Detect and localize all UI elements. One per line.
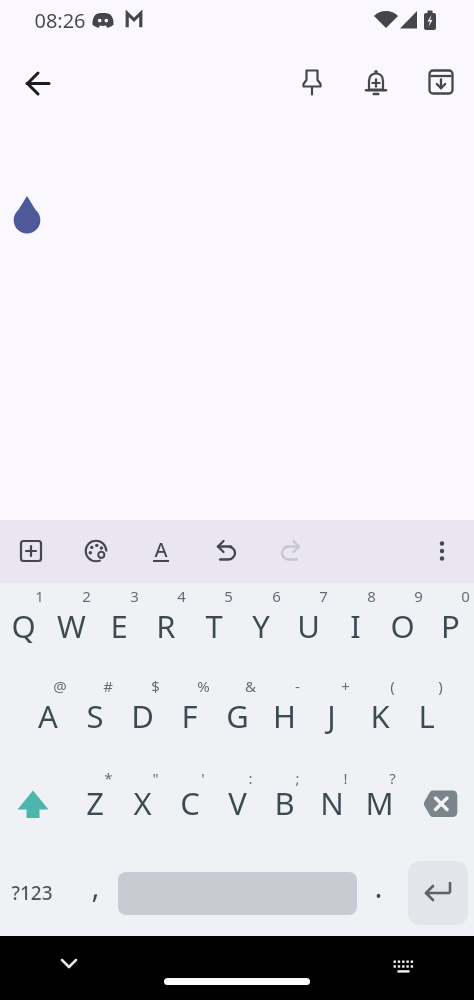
staticText: 08:26 [34, 7, 86, 34]
button[interactable]: L [403, 673, 450, 759]
button[interactable]: ?123 [0, 863, 64, 923]
staticText: N [320, 782, 344, 824]
staticText: S [86, 695, 104, 737]
staticText: ( [390, 676, 395, 696]
button[interactable] [10, 772, 57, 834]
staticText: % [197, 676, 210, 696]
button[interactable]: J [308, 673, 355, 759]
staticText: H [273, 695, 296, 737]
button[interactable]: D [119, 673, 166, 759]
button[interactable]: S [71, 673, 118, 759]
staticText: D [131, 695, 154, 737]
staticText: G [226, 695, 249, 737]
staticText: J [327, 695, 336, 737]
staticText: L [418, 695, 435, 737]
button[interactable] [45, 936, 93, 984]
button[interactable]: G [214, 673, 261, 759]
staticText: Y [252, 605, 270, 647]
staticText: ? [389, 768, 396, 788]
button[interactable]: H [261, 673, 308, 759]
staticText: ' [201, 768, 205, 788]
button[interactable] [288, 59, 336, 107]
staticText: 0 [461, 586, 470, 606]
staticText: T [205, 605, 223, 647]
button[interactable] [416, 59, 464, 107]
staticText: M [365, 782, 394, 824]
button[interactable] [7, 527, 55, 575]
button[interactable]: N [308, 760, 355, 846]
staticText: @ [53, 676, 67, 696]
button[interactable] [352, 59, 400, 107]
staticText: - [295, 676, 300, 696]
staticText: # [103, 676, 113, 696]
staticText: ?123 [11, 880, 53, 906]
staticText: E [110, 605, 128, 647]
button[interactable]: , [75, 856, 115, 916]
staticText: 5 [224, 586, 233, 606]
button[interactable] [418, 527, 466, 575]
staticText: 6 [272, 586, 281, 606]
staticText: I [350, 605, 361, 647]
staticText: F [181, 695, 198, 737]
button[interactable]: V [214, 760, 261, 846]
staticText: 8 [367, 586, 376, 606]
staticText: W [57, 605, 86, 647]
button[interactable]: Q [0, 583, 47, 669]
staticText: U [297, 605, 320, 647]
staticText: + [341, 676, 350, 696]
staticText: , [91, 866, 100, 907]
staticText: 3 [130, 586, 139, 606]
button[interactable] [417, 772, 464, 834]
button[interactable]: C [166, 760, 213, 846]
button[interactable]: E [95, 583, 142, 669]
staticText: R [156, 605, 176, 647]
staticText: X [133, 782, 152, 824]
staticText: P [441, 605, 460, 647]
button[interactable] [137, 527, 185, 575]
button[interactable]: T [190, 583, 237, 669]
button[interactable]: K [356, 673, 403, 759]
staticText: $ [151, 676, 160, 696]
staticText: ; [295, 768, 300, 788]
staticText: & [245, 676, 256, 696]
button[interactable]: I [332, 583, 379, 669]
staticText: C [180, 782, 200, 824]
button[interactable]: R [142, 583, 189, 669]
button[interactable] [14, 60, 62, 108]
staticText: Z [86, 782, 104, 824]
staticText: 2 [82, 586, 91, 606]
button[interactable]: W [48, 583, 95, 669]
staticText: " [152, 768, 159, 788]
button[interactable]: Z [71, 760, 118, 846]
button[interactable]: P [427, 583, 474, 669]
button[interactable] [267, 527, 315, 575]
button[interactable]: X [119, 760, 166, 846]
staticText: Q [11, 605, 36, 647]
button[interactable]: Y [237, 583, 284, 669]
button[interactable] [408, 861, 468, 925]
button[interactable] [72, 527, 120, 575]
button[interactable]: O [379, 583, 426, 669]
staticText: 7 [319, 586, 328, 606]
staticText: * [104, 768, 113, 788]
staticText: : [248, 768, 253, 788]
staticText: 9 [414, 586, 423, 606]
button[interactable]: U [285, 583, 332, 669]
button[interactable]: B [261, 760, 308, 846]
staticText: A [38, 695, 58, 737]
staticText: K [370, 695, 390, 737]
staticText: ) [438, 676, 443, 696]
staticText: A [154, 536, 168, 563]
button[interactable]: M [356, 760, 403, 846]
button[interactable]: F [166, 673, 213, 759]
staticText: O [390, 605, 415, 647]
staticText: B [274, 782, 295, 824]
button[interactable] [202, 527, 250, 575]
staticText: V [228, 782, 247, 824]
button[interactable] [379, 936, 427, 984]
button[interactable]: A [24, 673, 71, 759]
staticText: 4 [177, 586, 186, 606]
staticText: 1 [35, 586, 44, 606]
button[interactable]: . [358, 856, 398, 916]
